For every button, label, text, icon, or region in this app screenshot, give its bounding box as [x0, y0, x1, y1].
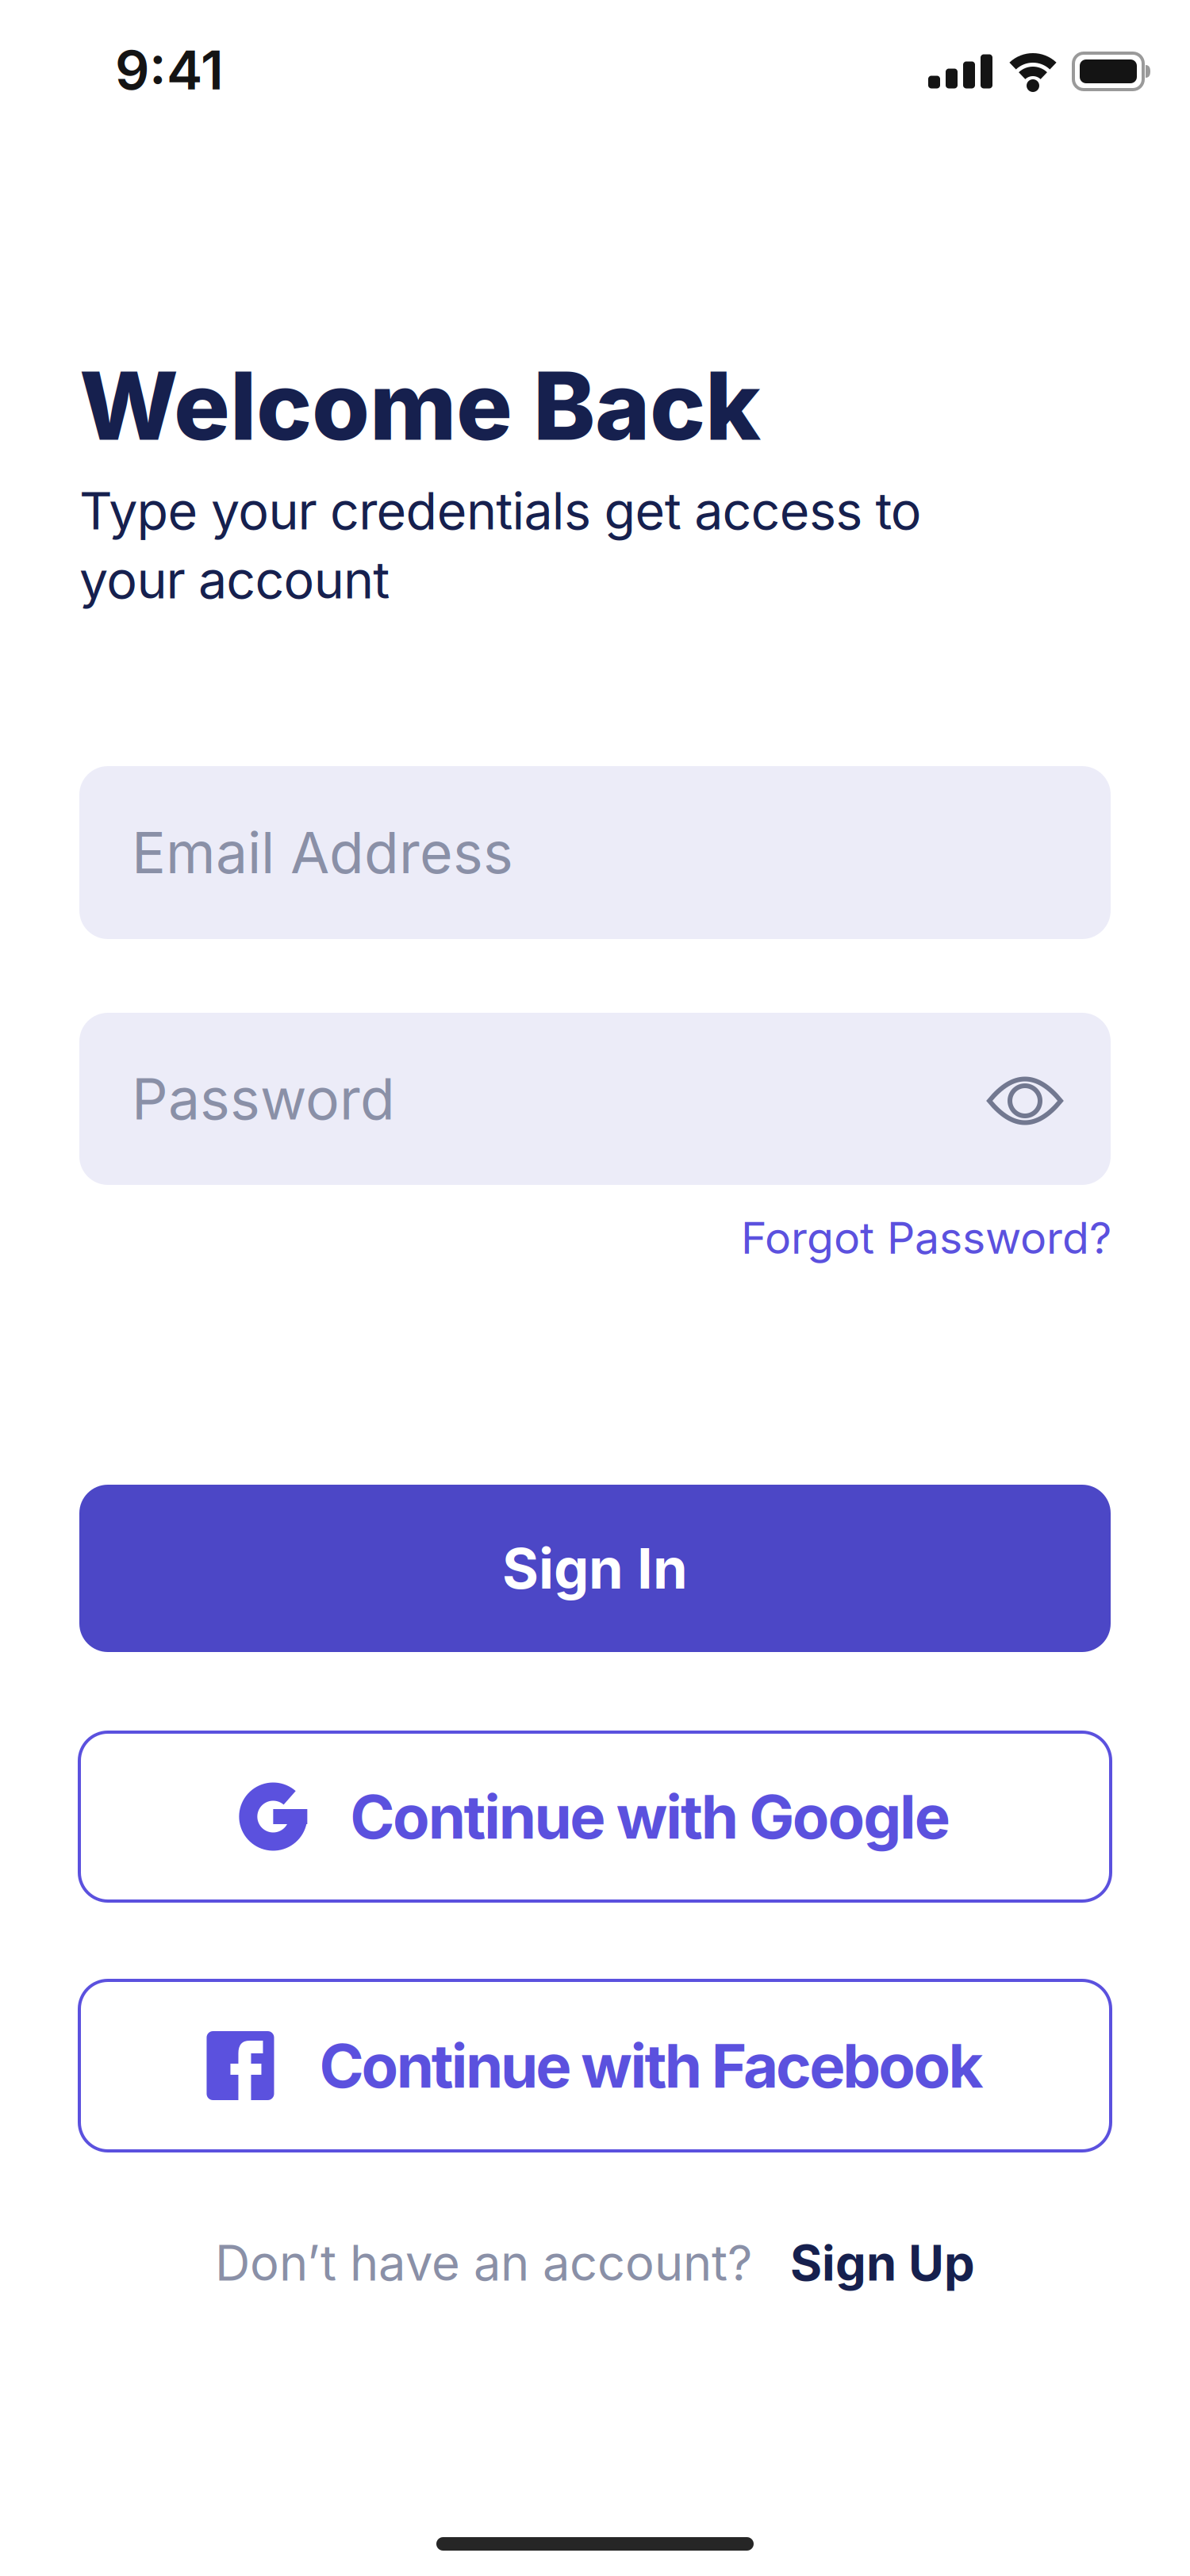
button[interactable]: Continue with Facebook	[79, 1980, 1111, 2151]
button[interactable]: Password	[79, 1013, 1111, 1185]
button[interactable]: Continue with Google	[79, 1732, 1111, 1901]
button[interactable]: Sign Up	[790, 2234, 975, 2292]
staticText: Forgot Password?	[741, 1212, 1111, 1264]
staticText: 9:41	[115, 38, 224, 102]
staticText: Sign In	[502, 1536, 688, 1601]
staticText: Welcome Back	[79, 351, 761, 461]
staticText: Password	[132, 1065, 395, 1132]
button[interactable]: Forgot Password?	[741, 1212, 1111, 1264]
staticText: Don’t have an account?	[215, 2234, 752, 2292]
button[interactable]: Sign In	[79, 1485, 1111, 1652]
staticText: your account	[79, 550, 390, 610]
button[interactable]: Show password	[987, 1075, 1063, 1127]
staticText: Type your credentials get access to	[79, 481, 922, 541]
staticText: Continue with Google	[350, 1781, 950, 1852]
staticText: Sign Up	[790, 2234, 975, 2292]
staticText: Email Address	[132, 819, 513, 886]
button[interactable]: Email Address	[79, 766, 1111, 939]
staticText: Continue with Facebook	[319, 2030, 983, 2101]
